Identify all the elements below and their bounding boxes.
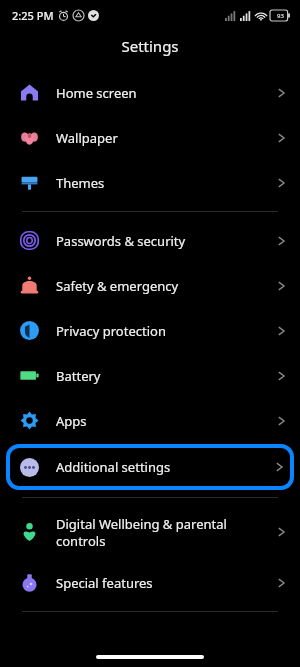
button[interactable]: Battery (0, 353, 300, 398)
staticText: Special features (56, 574, 277, 592)
staticText: Additional settings (56, 458, 275, 476)
staticText: Privacy protection (56, 322, 277, 340)
staticText: 93 (277, 12, 284, 20)
staticText: Battery (56, 367, 277, 385)
button[interactable]: Digital Wellbeing & parental controls (0, 504, 300, 560)
staticText: 2:25 PM (12, 8, 54, 23)
button[interactable]: Home screen (0, 70, 300, 115)
button[interactable]: Themes (0, 160, 300, 205)
button[interactable]: Wallpaper (0, 115, 300, 160)
staticText: Wallpaper (56, 129, 277, 147)
staticText: Safety & emergency (56, 277, 277, 295)
button[interactable]: Additional settings (8, 446, 292, 488)
button[interactable]: Safety & emergency (0, 263, 300, 308)
staticText: Themes (56, 174, 277, 192)
button[interactable]: Special features (0, 560, 300, 605)
button[interactable]: Apps (0, 398, 300, 443)
staticText: Home screen (56, 84, 277, 102)
staticText: Apps (56, 412, 277, 430)
staticText: Passwords & security (56, 232, 277, 250)
staticText: Settings (121, 36, 179, 56)
button[interactable]: Privacy protection (0, 308, 300, 353)
button[interactable]: Passwords & security (0, 218, 300, 263)
staticText: Digital Wellbeing & parental controls (56, 515, 277, 550)
